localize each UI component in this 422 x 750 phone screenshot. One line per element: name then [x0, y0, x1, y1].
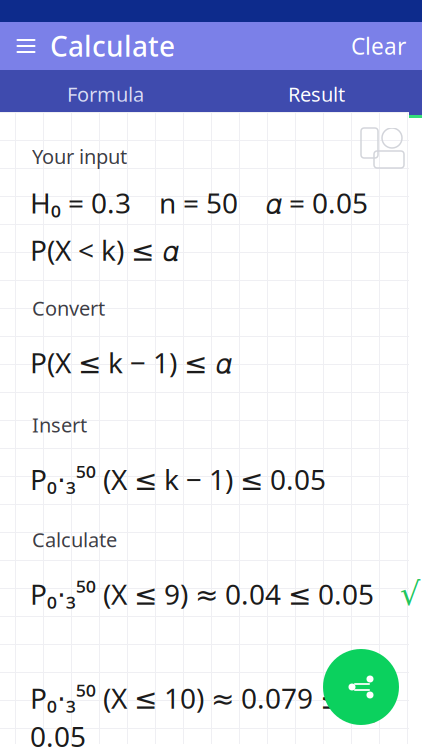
- staticText: Insert: [32, 411, 87, 438]
- staticText: H₀ = 0.3 n = 50 𝛼 = 0.05: [30, 184, 368, 222]
- button[interactable]: Result: [211, 70, 422, 118]
- staticText: ×: [363, 701, 377, 733]
- staticText: Calculate: [50, 27, 175, 65]
- staticText: P(X < k) ≤ 𝛼: [30, 231, 179, 269]
- staticText: P₀⋅₃⁵⁰ (X ≤ 9) ≈ 0.04 ≤ 0.05: [30, 575, 374, 613]
- button[interactable]: Clear: [335, 22, 422, 70]
- staticText: P(X ≤ k − 1) ≤ 𝛼: [30, 343, 232, 381]
- staticText: Result: [288, 81, 345, 107]
- staticText: √: [400, 575, 420, 612]
- button[interactable]: Formula: [0, 70, 211, 118]
- staticText: P₀⋅₃⁵⁰ (X ≤ 10) ≈ 0.079 ≤ 0.05: [30, 679, 343, 750]
- staticText: Clear: [351, 31, 406, 61]
- staticText: Convert: [32, 295, 105, 321]
- staticText: Formula: [67, 81, 144, 107]
- button[interactable]: Menu: [0, 22, 50, 70]
- staticText: P₀⋅₃⁵⁰ (X ≤ k − 1) ≤ 0.05: [30, 460, 326, 498]
- staticText: Calculate: [32, 526, 117, 553]
- button[interactable]: Share: [323, 649, 399, 725]
- staticText: Your input: [32, 143, 127, 170]
